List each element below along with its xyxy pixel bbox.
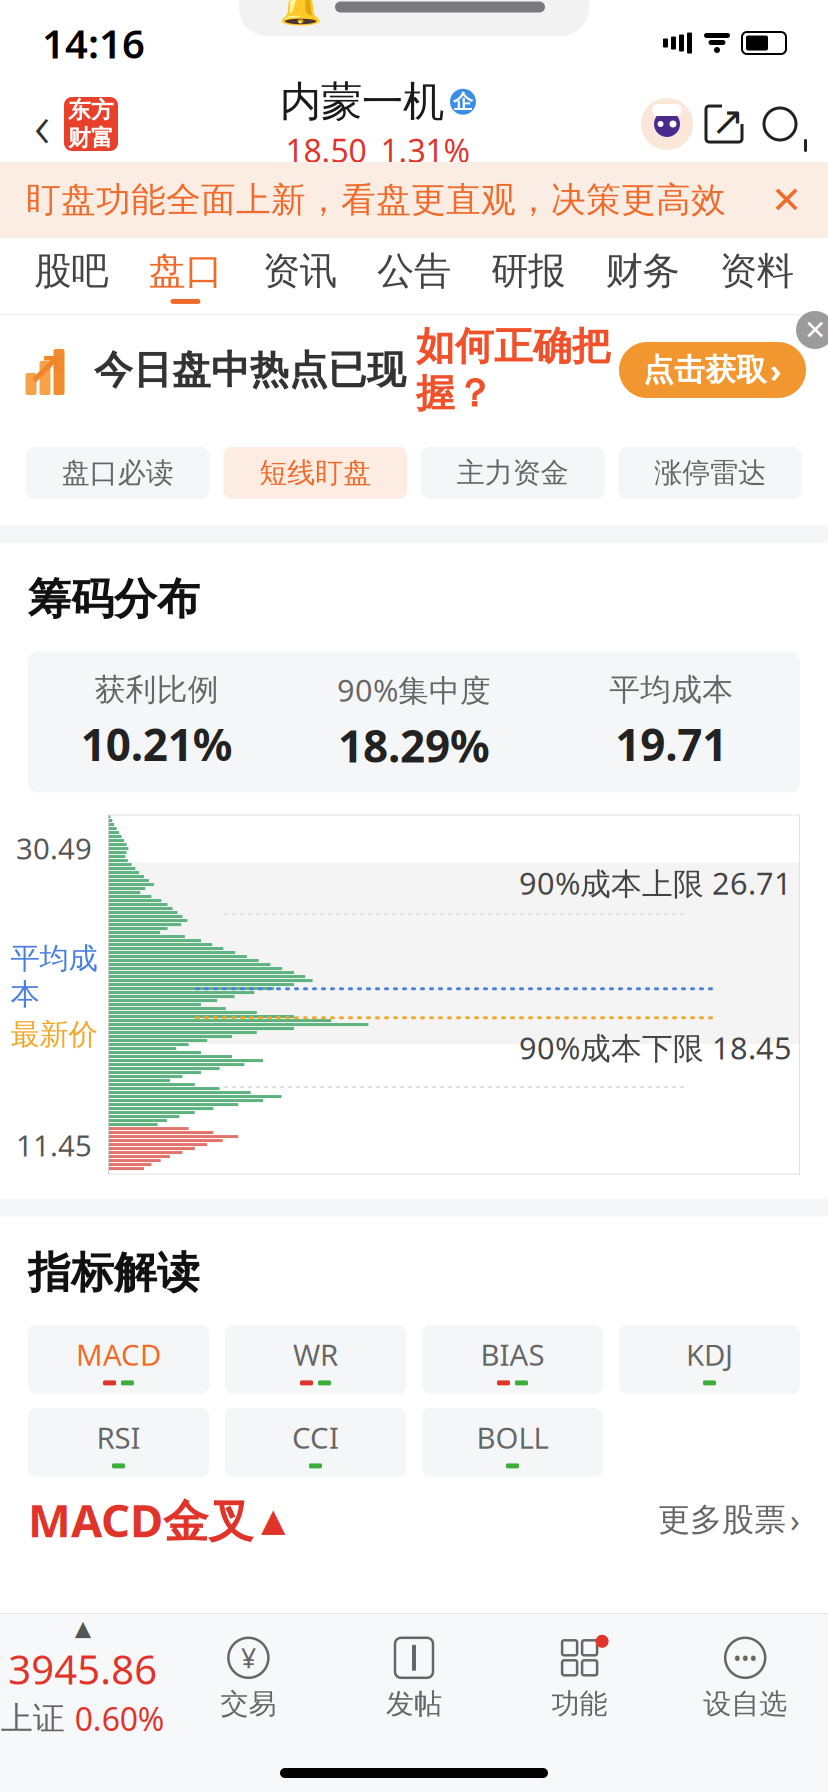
button[interactable]: 盯盘功能全面上新，看盘更直观，决策更高效 — [0, 162, 828, 238]
staticText: 获利比例 — [95, 671, 219, 709]
staticText: WR — [293, 1335, 338, 1374]
button[interactable]: 发帖 — [331, 1635, 497, 1721]
button[interactable]: 股吧 — [14, 248, 128, 304]
staticText: 研报 — [491, 248, 565, 294]
button[interactable]: MACD — [28, 1325, 209, 1394]
staticText: 19.71 — [615, 715, 727, 773]
staticText: 平均成本 — [609, 671, 733, 709]
staticText: ↗ — [26, 344, 64, 395]
staticText: 18.50 — [285, 129, 366, 172]
staticText: 90%成本下限 18.45 — [519, 1027, 792, 1068]
button[interactable]: 功能 — [497, 1635, 662, 1721]
staticText: 更多股票 — [658, 1500, 786, 1539]
staticText: ¥ — [241, 1640, 256, 1675]
button[interactable]: ••• — [662, 1635, 828, 1721]
staticText: 内蒙一机 — [280, 76, 444, 127]
staticText: 短线盯盘 — [259, 456, 371, 490]
button[interactable]: 盘口必读 — [26, 447, 209, 499]
button[interactable]: KDJ — [619, 1325, 800, 1394]
button[interactable]: 东方财富首页 — [64, 97, 118, 151]
staticText: 企 — [453, 89, 473, 114]
staticText: ▲ — [261, 1502, 286, 1538]
staticText: 财务 — [606, 248, 680, 294]
staticText: 平均成本 — [10, 940, 97, 1013]
staticText: 🔔 — [278, 0, 321, 27]
button[interactable]: 资料 — [700, 248, 814, 304]
staticText: 财富 — [68, 124, 114, 152]
staticText: ▲ — [75, 1616, 91, 1640]
button[interactable]: 搜索 — [752, 94, 808, 154]
button[interactable]: 分享 — [696, 94, 752, 154]
staticText: 盘口 — [148, 248, 222, 294]
staticText: 18.29% — [338, 716, 490, 774]
staticText: ‹ — [34, 83, 50, 165]
staticText: 资讯 — [263, 248, 337, 294]
staticText: 股吧 — [34, 248, 108, 294]
staticText: 发帖 — [386, 1687, 442, 1721]
button[interactable]: 公告 — [357, 248, 471, 304]
button[interactable]: 涨停雷达 — [618, 447, 802, 499]
button[interactable]: WR — [225, 1325, 406, 1394]
staticText: 设自选 — [703, 1687, 787, 1721]
staticText: ✕ — [804, 315, 826, 345]
staticText: 30.49 — [16, 829, 92, 868]
staticText: 主力资金 — [457, 456, 569, 490]
staticText: › — [790, 1499, 800, 1541]
staticText: 筹码分布 — [28, 573, 200, 625]
staticText: 0.60% — [75, 1697, 165, 1740]
staticText: ↗ — [711, 98, 745, 144]
button[interactable]: CCI — [225, 1408, 406, 1477]
staticText: KDJ — [686, 1335, 733, 1374]
button[interactable]: ▲ — [0, 1616, 166, 1740]
button[interactable]: 财务 — [585, 248, 700, 304]
staticText: 涨停雷达 — [654, 456, 766, 490]
staticText: 交易 — [220, 1687, 276, 1721]
button[interactable]: 盘口 — [128, 248, 243, 304]
staticText: 最新价 — [10, 1017, 97, 1053]
staticText: 10.21% — [81, 715, 233, 773]
staticText: 指标解读 — [28, 1247, 200, 1299]
staticText: › — [770, 349, 782, 391]
button[interactable]: 智能助手 — [638, 93, 696, 155]
staticText: 如何正确把握？ — [416, 322, 611, 417]
staticText: 3945.86 — [8, 1642, 157, 1695]
staticText: ✕ — [771, 179, 802, 221]
staticText: 点击获取 — [643, 351, 767, 389]
button[interactable]: BIAS — [422, 1325, 603, 1394]
button[interactable]: BOLL — [422, 1408, 603, 1477]
staticText: 东方 — [68, 96, 114, 124]
button[interactable]: 关闭广告 — [796, 311, 828, 349]
button[interactable]: 短线盯盘 — [223, 447, 407, 499]
staticText: 上证 — [1, 1699, 65, 1738]
staticText: 11.45 — [16, 1126, 92, 1165]
button[interactable]: 研报 — [471, 248, 585, 304]
button[interactable]: RSI — [28, 1408, 209, 1477]
button[interactable]: ¥ — [166, 1635, 331, 1721]
staticText: BOLL — [476, 1418, 548, 1457]
button[interactable]: 主力资金 — [421, 447, 604, 499]
staticText: BIAS — [480, 1335, 544, 1374]
staticText: 资料 — [720, 248, 794, 294]
staticText: 90%集中度 — [337, 669, 491, 710]
staticText: 1.31% — [380, 129, 470, 172]
button[interactable]: 返回 — [20, 94, 64, 154]
staticText: 公告 — [377, 248, 451, 294]
staticText: ••• — [733, 1644, 757, 1672]
staticText: 功能 — [552, 1687, 608, 1721]
staticText: RSI — [96, 1418, 140, 1457]
staticText: 90%成本上限 26.71 — [519, 863, 792, 903]
staticText: 盘口必读 — [62, 456, 174, 490]
staticText: CCI — [292, 1418, 339, 1457]
staticText: 今日盘中热点已现 — [94, 346, 406, 394]
staticText: 14:16 — [42, 16, 145, 69]
staticText: MACD金叉 — [28, 1490, 253, 1550]
button[interactable]: 资讯 — [243, 248, 357, 304]
staticText: 盯盘功能全面上新，看盘更直观，决策更高效 — [26, 179, 726, 221]
button[interactable]: ↗ — [0, 315, 828, 425]
staticText: MACD — [76, 1335, 161, 1374]
button[interactable]: 更多股票 — [658, 1499, 800, 1541]
